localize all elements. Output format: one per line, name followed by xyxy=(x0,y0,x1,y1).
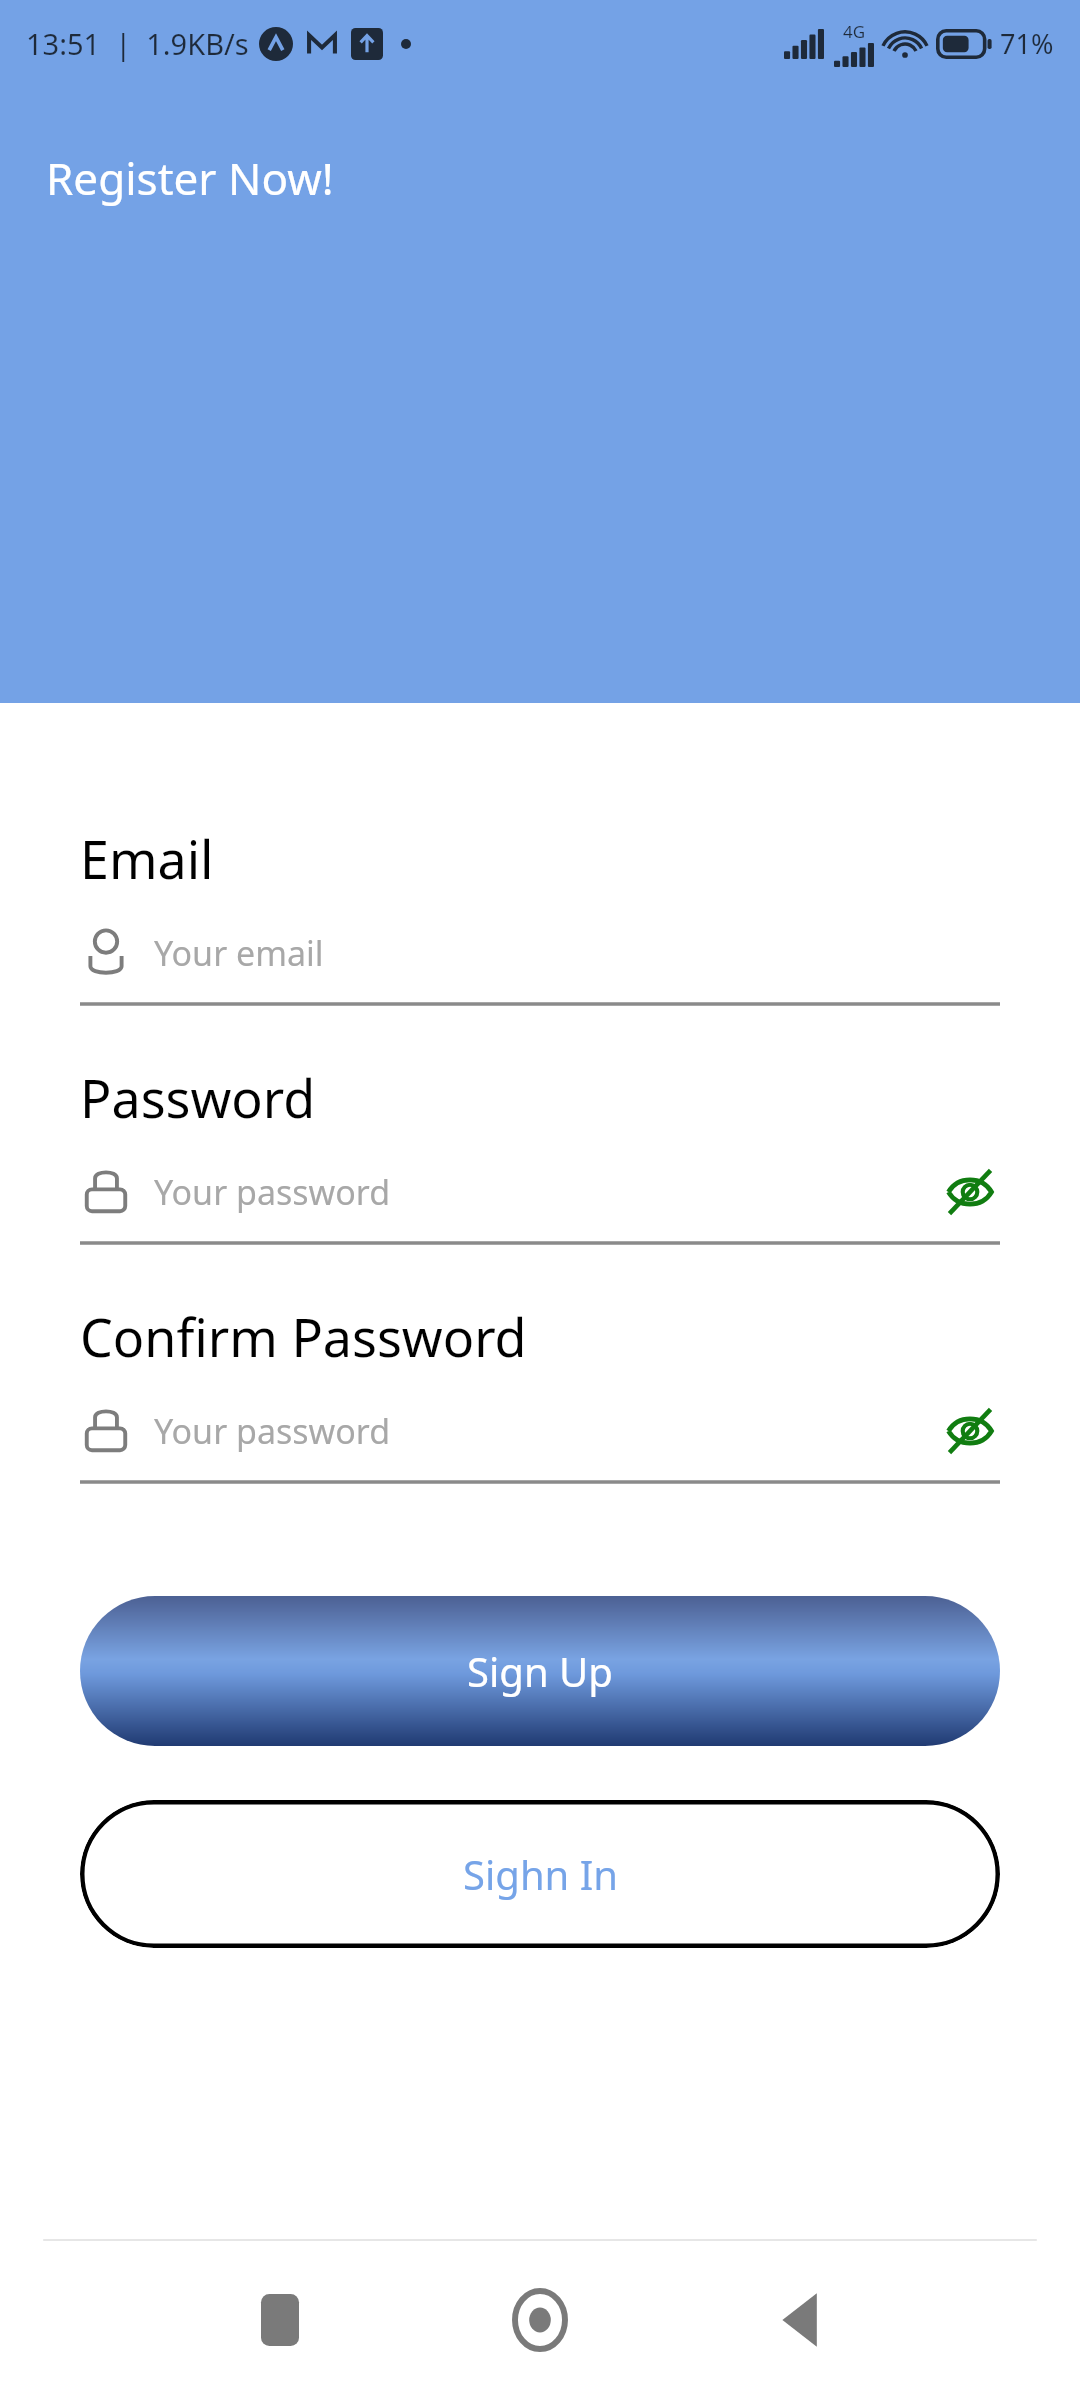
button[interactable]: Sign Up xyxy=(80,1596,1000,1746)
staticText: Confirm Password xyxy=(80,1301,527,1372)
staticText: 71% xyxy=(1000,25,1054,62)
staticText: Your password xyxy=(154,1169,391,1215)
staticText: Sighn In xyxy=(463,1847,618,1901)
button[interactable]: Back xyxy=(670,2260,930,2380)
button[interactable]: Toggle password visibility xyxy=(940,1401,1000,1461)
staticText: Sign Up xyxy=(467,1644,613,1698)
staticText: Register Now! xyxy=(46,148,334,208)
button[interactable]: Home xyxy=(410,2260,670,2380)
button[interactable]: Toggle password visibility xyxy=(940,1162,1000,1222)
button[interactable]: Your password xyxy=(80,1155,1000,1229)
staticText: 4G xyxy=(843,20,866,43)
staticText: Your email xyxy=(154,930,324,976)
staticText: Password xyxy=(80,1062,316,1133)
button[interactable]: Sighn In xyxy=(80,1800,1000,1948)
button[interactable]: Your email xyxy=(80,916,1000,990)
staticText: 13:51 | 1.9KB/s xyxy=(26,24,249,63)
button[interactable]: Your password xyxy=(80,1394,1000,1468)
staticText: Your password xyxy=(154,1408,391,1454)
button[interactable]: Recents xyxy=(150,2260,410,2380)
staticText: Email xyxy=(80,823,214,894)
